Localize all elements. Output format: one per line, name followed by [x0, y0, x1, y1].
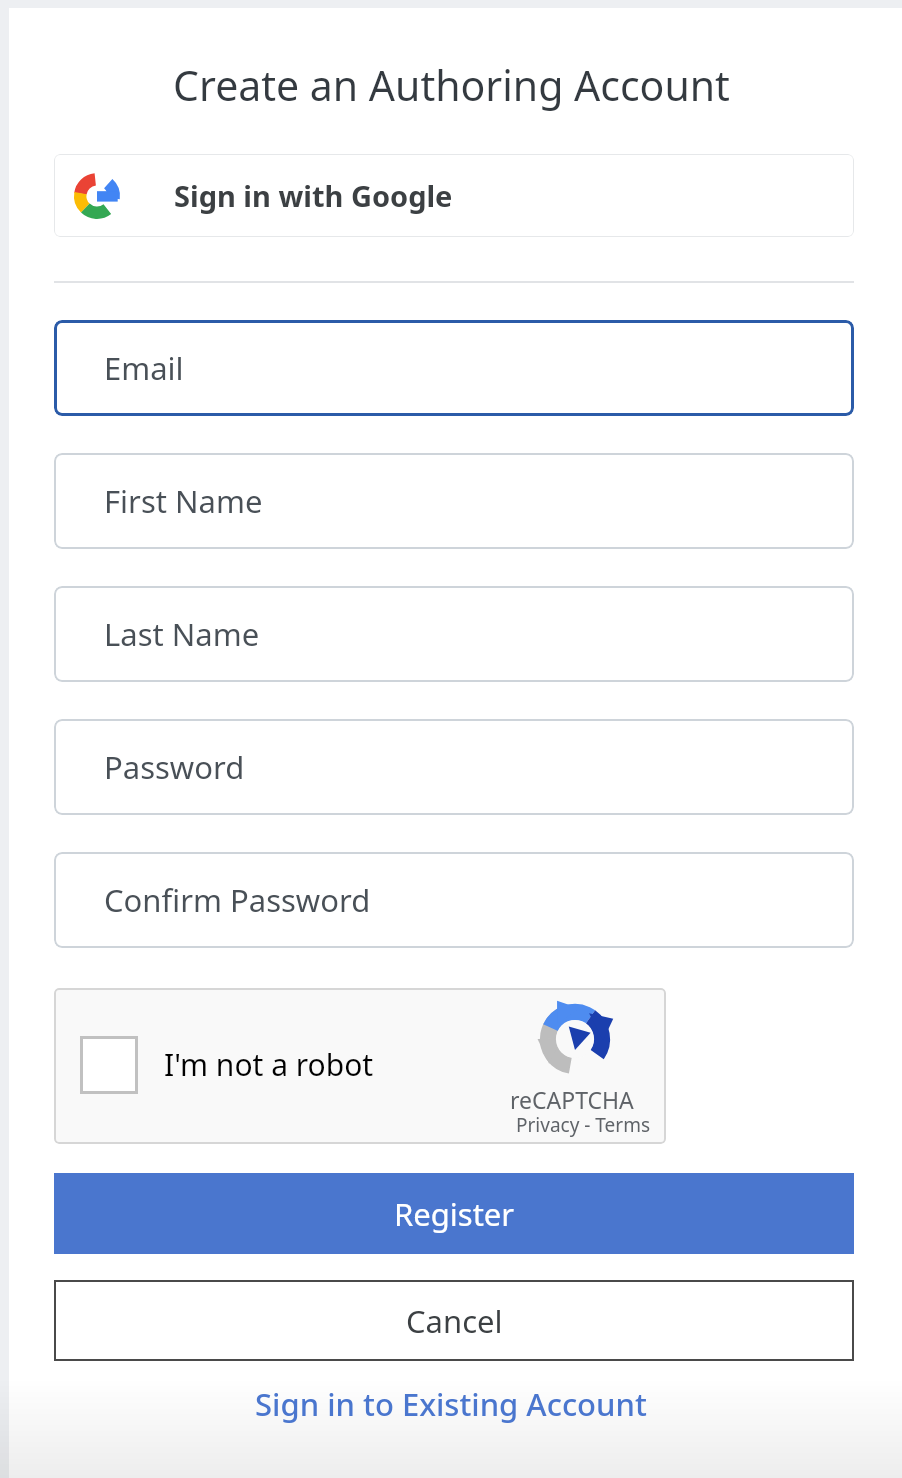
staticText: Create an Authoring Account: [173, 57, 730, 113]
staticText: Privacy - Terms: [516, 1112, 651, 1138]
button[interactable]: I'm not a robot checkbox: [54, 988, 666, 1144]
other: reCAPTCHA logo: [536, 1000, 614, 1078]
button[interactable]: Google logo: [54, 154, 854, 237]
button[interactable]: Cancel: [54, 1280, 854, 1361]
staticText: First Name: [104, 480, 263, 522]
staticText: Register: [394, 1193, 515, 1235]
button[interactable]: Password: [54, 719, 854, 815]
button[interactable]: Last Name: [54, 586, 854, 682]
other: I'm not a robot checkbox: [80, 1036, 138, 1094]
button[interactable]: Register: [54, 1173, 854, 1254]
staticText: Password: [104, 746, 245, 788]
other: Google logo: [74, 173, 120, 219]
staticText: reCAPTCHA: [510, 1084, 634, 1115]
button[interactable]: Sign in to Existing Account: [0, 1373, 902, 1435]
staticText: Sign in to Existing Account: [255, 1383, 647, 1425]
staticText: Cancel: [406, 1300, 503, 1342]
button[interactable]: Confirm Password: [54, 852, 854, 948]
staticText: Sign in with Google: [174, 176, 453, 215]
button[interactable]: Email: [54, 320, 854, 416]
staticText: I'm not a robot: [164, 1044, 374, 1085]
button[interactable]: First Name: [54, 453, 854, 549]
staticText: Confirm Password: [104, 879, 371, 921]
staticText: Last Name: [104, 613, 260, 655]
staticText: Email: [104, 347, 184, 389]
